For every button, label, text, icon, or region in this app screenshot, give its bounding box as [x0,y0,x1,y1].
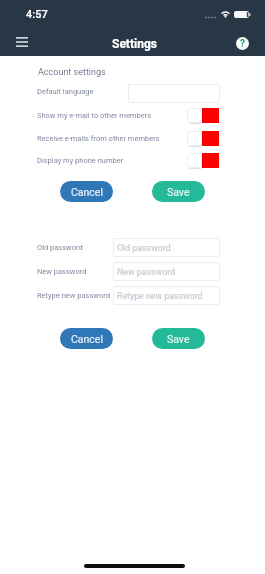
button[interactable]: Old password [113,238,220,257]
button[interactable]: Default language field [128,84,220,103]
staticText: Account settings [38,67,106,78]
staticText: 4:57 [26,8,48,21]
button[interactable]: Cancel [60,181,113,202]
staticText: New password [117,267,176,277]
staticText: Display my phone number [37,156,124,165]
button[interactable]: Retype new password [113,286,220,305]
staticText: New password [37,267,87,276]
staticText: Cancel [71,333,103,345]
button[interactable]: Help [236,37,249,50]
button[interactable]: Display my phone number [187,153,219,169]
staticText: Save [167,333,190,345]
staticText: Retype new password [37,291,110,300]
staticText: Save [167,186,190,198]
button[interactable]: Receive e-mails from other members [187,131,219,147]
staticText: Old password [117,243,171,253]
staticText: Old password [37,243,83,252]
button[interactable]: Cancel [60,328,113,349]
button[interactable]: Show my e-mail to other members [187,108,219,124]
button[interactable]: Save [152,328,205,349]
staticText: Settings [112,37,157,51]
button[interactable]: New password [113,262,220,281]
staticText: Receive e-mails from other members [37,134,160,143]
staticText: Cancel [71,186,103,198]
staticText: Retype new password [117,291,203,301]
button[interactable]: Save [152,181,205,202]
staticText: Default language [37,87,94,96]
staticText: Show my e-mail to other members [37,111,152,120]
button[interactable]: Menu [10,30,34,54]
staticText: ? [240,38,245,50]
